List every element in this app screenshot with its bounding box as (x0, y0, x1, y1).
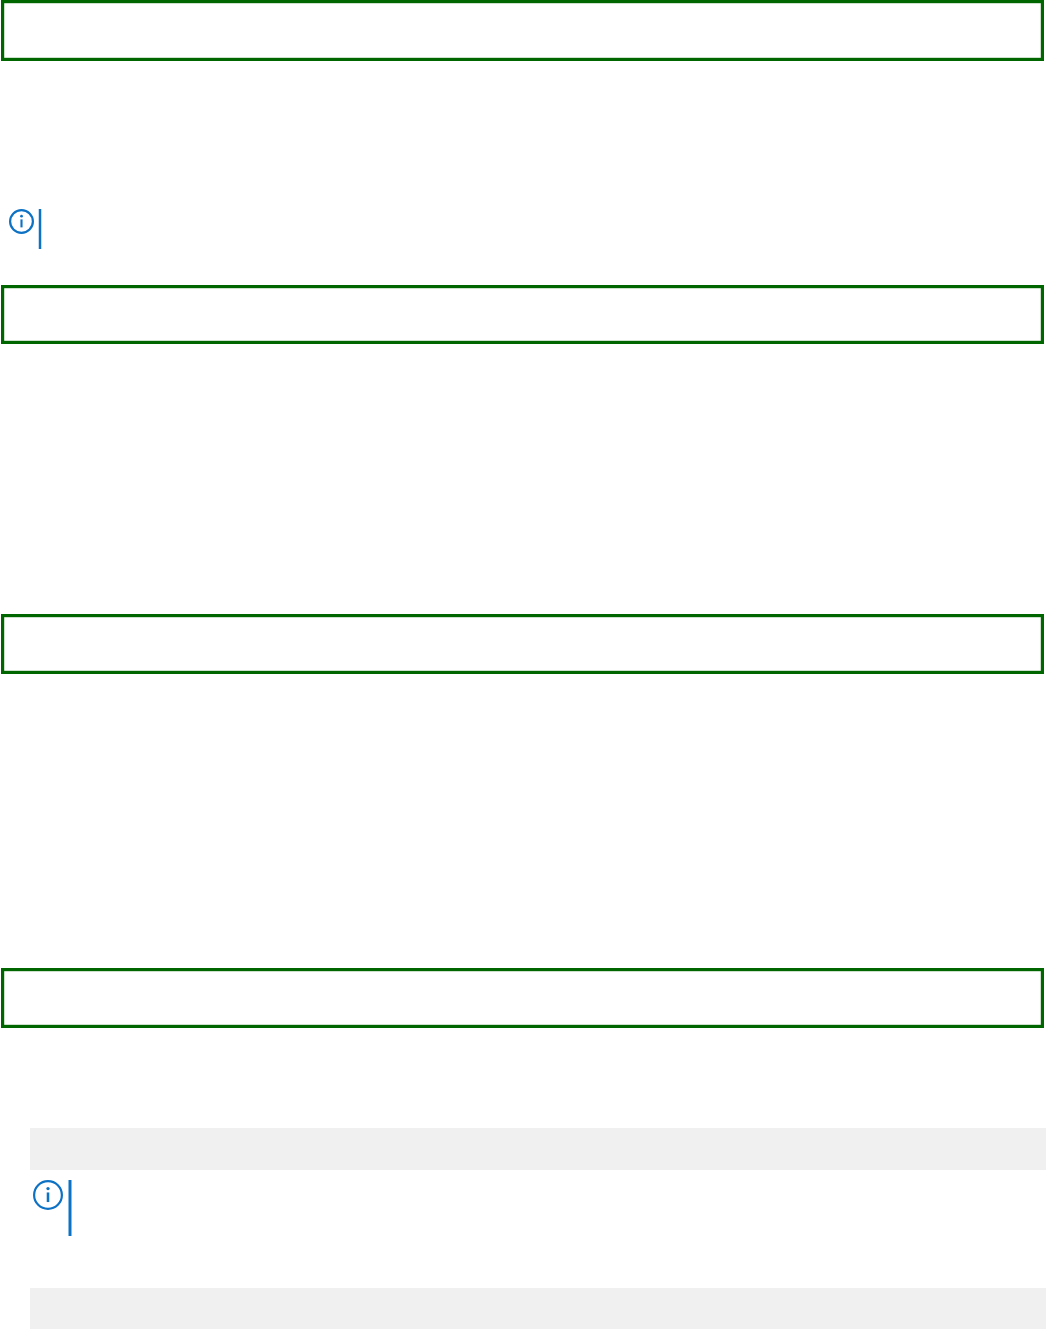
button[interactable] (1, 614, 1044, 674)
button[interactable] (1, 285, 1044, 344)
button[interactable] (1, 0, 1044, 61)
button[interactable]: Information (9, 209, 44, 249)
button[interactable] (1, 968, 1044, 1028)
button[interactable]: Information (33, 1180, 74, 1236)
